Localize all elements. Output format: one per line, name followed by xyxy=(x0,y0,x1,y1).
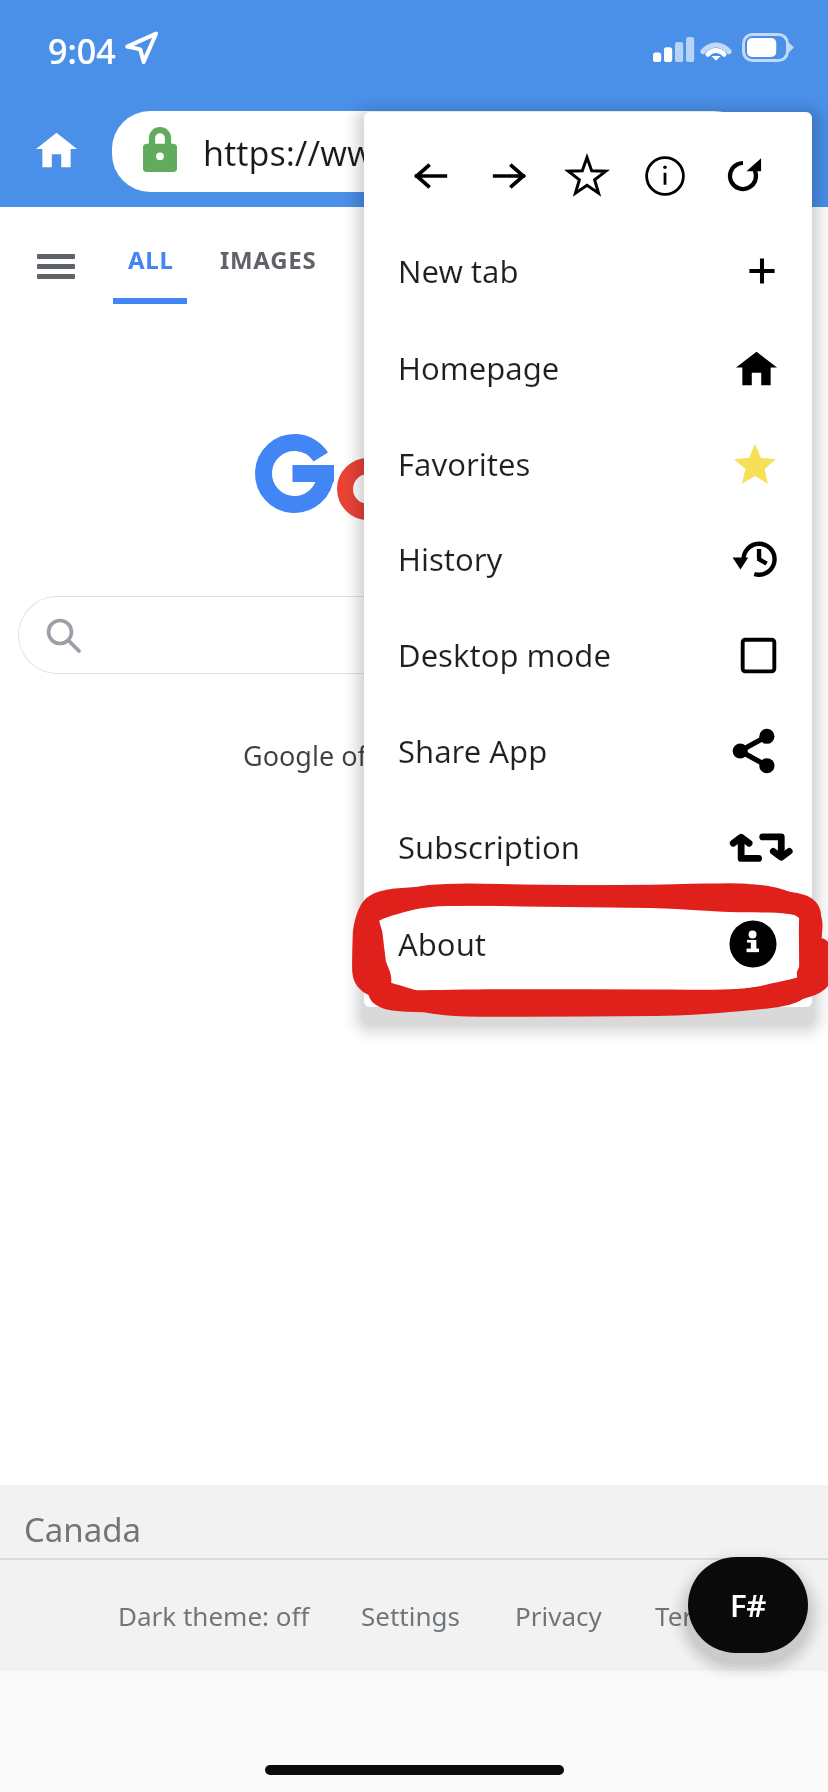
staticText: History xyxy=(398,538,503,580)
button[interactable]: Bookmark xyxy=(558,147,616,205)
button[interactable]: Home xyxy=(24,118,88,182)
button[interactable]: Desktop mode xyxy=(364,607,812,703)
button[interactable]: Forward xyxy=(480,147,538,205)
staticText: IMAGES xyxy=(220,243,317,276)
staticText: Settings xyxy=(361,1598,460,1633)
staticText: https://www.google.com xyxy=(203,130,597,176)
staticText: Share App xyxy=(398,730,548,772)
button[interactable]: Back xyxy=(402,147,460,205)
staticText: Subscription xyxy=(398,826,580,868)
button[interactable] xyxy=(18,596,810,674)
staticText: New tab xyxy=(398,250,519,292)
button[interactable]: Favorites xyxy=(364,416,812,512)
button[interactable]: IMAGES xyxy=(205,218,331,304)
button[interactable]: Homepage xyxy=(364,320,812,416)
staticText: 9:04 xyxy=(48,28,116,74)
staticText: F# xyxy=(730,1584,767,1626)
staticText: Google offered in: Français xyxy=(243,737,584,774)
staticText: Privacy xyxy=(515,1598,602,1633)
staticText: Desktop mode xyxy=(398,634,611,676)
staticText: ALL xyxy=(128,243,174,276)
button[interactable]: F# xyxy=(688,1557,808,1653)
button[interactable]: Reload xyxy=(714,147,772,205)
button[interactable]: Share App xyxy=(364,703,812,799)
staticText: Canada xyxy=(24,1507,142,1552)
button[interactable]: New tab xyxy=(364,223,812,319)
staticText: About xyxy=(398,923,486,965)
button[interactable]: Privacy xyxy=(515,1598,602,1633)
button[interactable]: Info xyxy=(636,147,694,205)
staticText: Favorites xyxy=(398,443,531,485)
button[interactable]: Settings xyxy=(361,1598,460,1633)
staticText: Homepage xyxy=(398,347,560,389)
button[interactable]: Terms xyxy=(655,1598,730,1633)
staticText: Terms xyxy=(655,1598,730,1633)
button[interactable]: https://www.google.com xyxy=(112,111,752,192)
button[interactable]: About xyxy=(364,896,812,992)
button[interactable]: Dark theme: off xyxy=(118,1598,310,1633)
button[interactable]: ALL xyxy=(113,218,188,304)
button[interactable]: Menu xyxy=(16,226,96,306)
button[interactable]: History xyxy=(364,511,812,607)
staticText: Dark theme: off xyxy=(118,1598,310,1633)
button[interactable]: Subscription xyxy=(364,799,812,895)
